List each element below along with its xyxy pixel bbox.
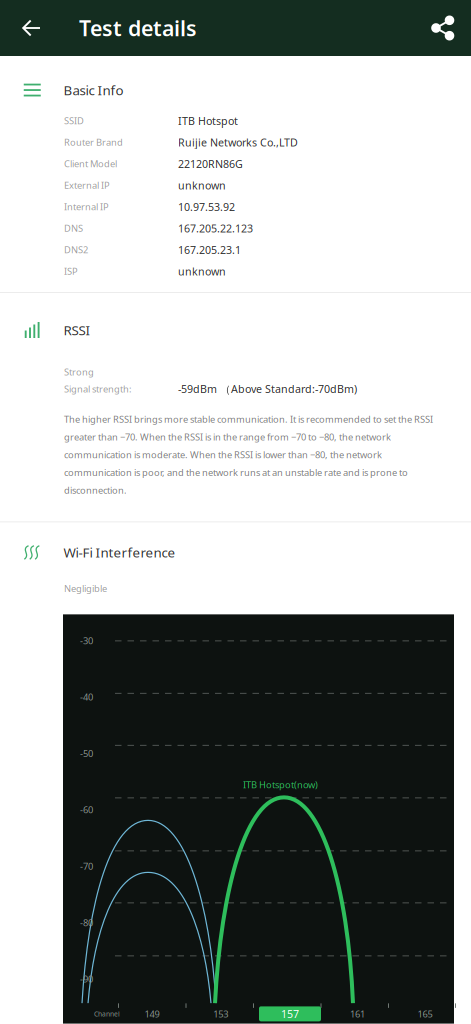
- staticText: DNS: [64, 222, 83, 234]
- staticText: ITB Hotspot: [178, 114, 238, 128]
- staticText: Ruijie Networks Co.,LTD: [178, 135, 298, 149]
- staticText: unknown: [178, 264, 226, 278]
- staticText: 10.97.53.92: [178, 200, 235, 214]
- staticText: Wi-Fi Interference: [63, 543, 175, 561]
- staticText: 22120RN86G: [178, 157, 243, 171]
- staticText: 165: [417, 1008, 432, 1020]
- staticText: RSSI: [63, 321, 90, 339]
- staticText: unknown: [178, 178, 226, 192]
- staticText: External IP: [64, 179, 110, 191]
- staticText: Router Brand: [64, 136, 123, 148]
- staticText: Basic Info: [63, 81, 123, 99]
- staticText: -80: [80, 916, 93, 929]
- staticText: 157: [281, 1007, 299, 1021]
- staticText: Negligible: [64, 582, 107, 595]
- staticText: -59dBm （Above Standard:-70dBm): [178, 382, 357, 396]
- staticText: 167.205.23.1: [178, 243, 241, 257]
- staticText: Signal strength:: [64, 383, 132, 395]
- staticText: -90: [80, 973, 93, 985]
- staticText: Test details: [79, 14, 197, 42]
- staticText: 161: [350, 1008, 365, 1020]
- staticText: 153: [213, 1008, 228, 1020]
- staticText: DNS2: [64, 244, 88, 256]
- staticText: SSID: [64, 115, 84, 127]
- staticText: 167.205.22.123: [178, 221, 253, 235]
- button[interactable]: Back: [0, 0, 62, 56]
- staticText: -60: [80, 803, 93, 816]
- staticText: The higher RSSI brings more stable commu…: [64, 413, 433, 496]
- staticText: ITB Hotspot(now): [243, 778, 318, 791]
- staticText: -50: [80, 747, 93, 760]
- staticText: 149: [144, 1008, 159, 1020]
- staticText: Client Model: [64, 158, 117, 170]
- staticText: -30: [80, 634, 93, 647]
- staticText: ISP: [64, 265, 78, 277]
- staticText: -40: [80, 691, 93, 703]
- staticText: Strong: [64, 366, 94, 378]
- staticText: -70: [80, 860, 93, 872]
- button[interactable]: Share: [415, 0, 471, 56]
- staticText: Internal IP: [64, 201, 109, 213]
- staticText: Channel: [94, 1009, 120, 1018]
